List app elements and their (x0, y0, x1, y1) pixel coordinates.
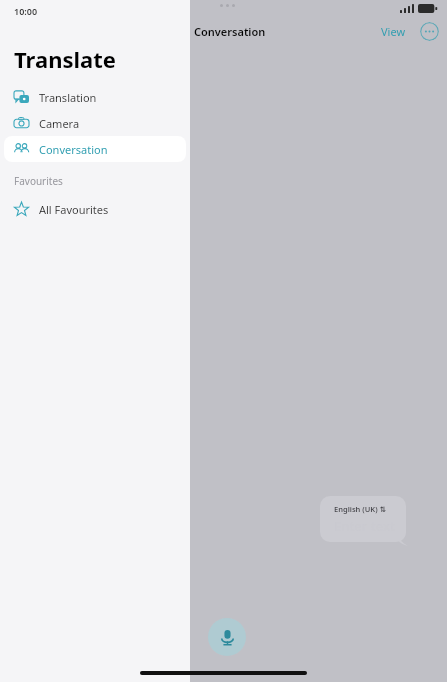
button[interactable]: All Favourites (4, 196, 186, 222)
button[interactable]: Translation (4, 84, 186, 110)
button[interactable]: Record with microphone (208, 618, 246, 656)
button[interactable]: Camera (4, 110, 186, 136)
staticText: Camera (39, 116, 80, 131)
button[interactable]: English (UK) ⇅ (320, 496, 406, 542)
button[interactable]: More options (420, 22, 439, 41)
staticText: Conversation (39, 142, 108, 157)
button[interactable]: Conversation (4, 136, 186, 162)
staticText: 10:00 (14, 5, 38, 17)
button[interactable]: View (377, 22, 410, 41)
staticText: Translation (39, 90, 97, 105)
staticText: Conversation (194, 24, 266, 39)
staticText: View (381, 24, 406, 39)
staticText: Favourites (14, 174, 63, 188)
staticText: English (UK) ⇅ (334, 504, 386, 514)
staticText: All Favourites (39, 202, 109, 217)
staticText: Translate (14, 44, 116, 74)
